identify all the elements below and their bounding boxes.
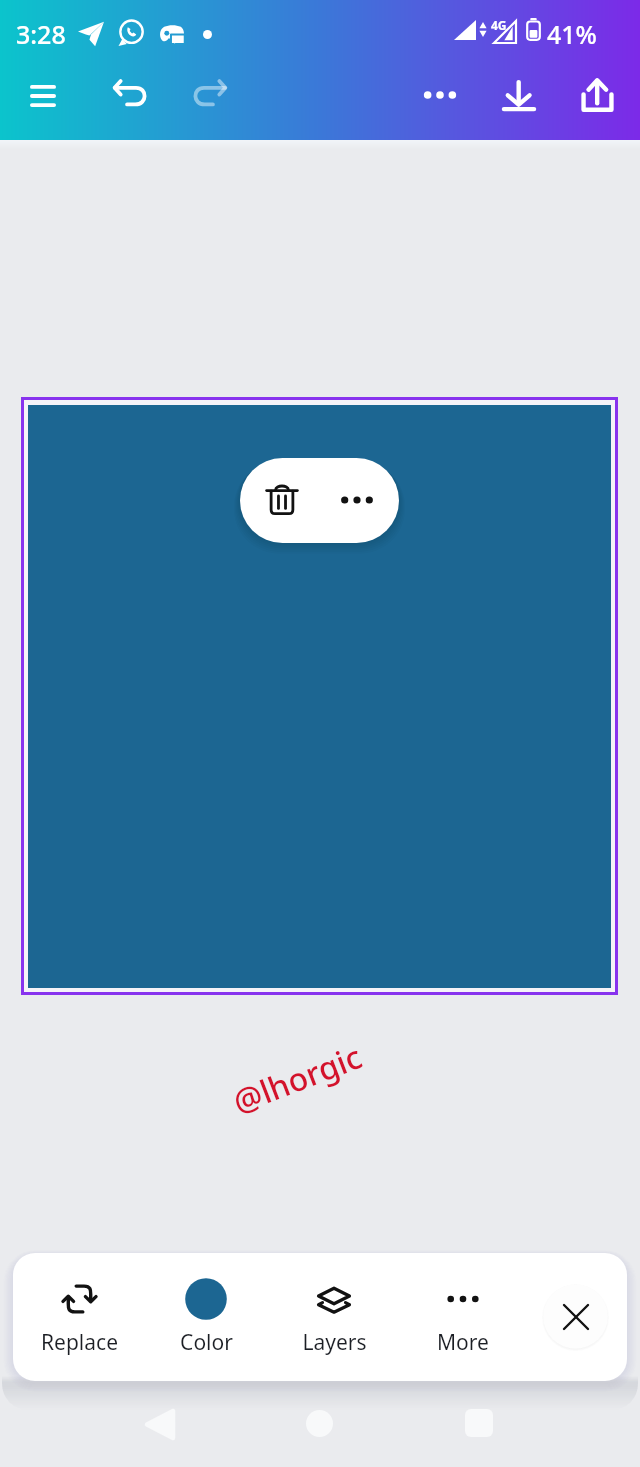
- button[interactable]: Recents: [451, 1395, 507, 1451]
- button[interactable]: Download: [491, 67, 547, 123]
- button[interactable]: Menu: [14, 67, 71, 124]
- staticText: Color: [180, 1328, 233, 1356]
- button[interactable]: Home: [291, 1395, 347, 1451]
- button[interactable]: Layers: [270, 1253, 398, 1381]
- staticText: Layers: [302, 1328, 367, 1356]
- staticText: 4G: [491, 17, 507, 33]
- button[interactable]: Delete: [254, 472, 310, 528]
- button[interactable]: Undo: [101, 66, 157, 122]
- button[interactable]: Replace: [15, 1253, 143, 1381]
- button[interactable]: Color: [142, 1253, 270, 1381]
- button[interactable]: Redo: [183, 66, 239, 122]
- button[interactable]: More options: [412, 67, 468, 123]
- staticText: More: [437, 1328, 489, 1356]
- staticText: Replace: [41, 1328, 118, 1356]
- button[interactable]: Back: [131, 1396, 187, 1452]
- staticText: 41%: [547, 17, 597, 51]
- staticText: 3:28: [16, 17, 66, 51]
- button[interactable]: Close: [542, 1283, 609, 1350]
- button[interactable]: Share: [569, 67, 625, 123]
- button[interactable]: More options: [329, 472, 385, 528]
- button[interactable]: More: [399, 1253, 527, 1381]
- staticText: @lhorgic: [227, 1034, 368, 1124]
